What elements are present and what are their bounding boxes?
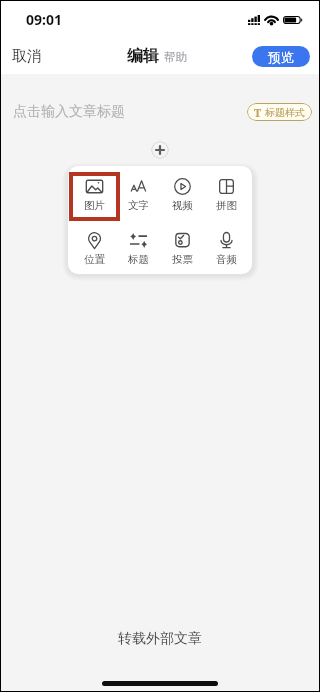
staticText: 编辑 — [127, 46, 159, 66]
button[interactable]: 取消 — [1, 39, 53, 74]
button[interactable]: 位置 — [72, 220, 116, 274]
button[interactable]: 视频 — [160, 166, 204, 220]
staticText: 文字 — [128, 199, 149, 212]
staticText: 转载外部文章 — [118, 630, 202, 648]
staticText: 帮助 — [164, 50, 187, 64]
button[interactable]: 图片 — [72, 166, 116, 220]
button[interactable]: Add content — [151, 141, 169, 159]
staticText: 预览 — [268, 49, 294, 65]
button[interactable]: 标题 — [116, 220, 160, 274]
button[interactable]: 转载外部文章 — [1, 616, 319, 662]
staticText: 视频 — [172, 199, 193, 212]
button[interactable]: 拼图 — [204, 166, 248, 220]
staticText: 位置 — [84, 253, 105, 266]
staticText: 标题样式 — [265, 106, 305, 119]
staticText: 投票 — [172, 253, 193, 266]
staticText: 标题 — [128, 253, 149, 266]
staticText: 取消 — [12, 47, 42, 66]
button[interactable]: 预览 — [252, 46, 310, 67]
staticText: 09:01 — [26, 10, 62, 29]
button[interactable]: T — [247, 103, 312, 121]
button[interactable]: 投票 — [160, 220, 204, 274]
button[interactable]: 音频 — [204, 220, 248, 274]
staticText: 拼图 — [216, 199, 237, 212]
button[interactable]: 文字 — [116, 166, 160, 220]
staticText: 点击输入文章标题 — [13, 103, 125, 121]
staticText: 图片 — [84, 199, 105, 212]
staticText: T — [254, 105, 262, 120]
button[interactable]: 帮助 — [164, 50, 187, 66]
staticText: 音频 — [216, 253, 237, 266]
